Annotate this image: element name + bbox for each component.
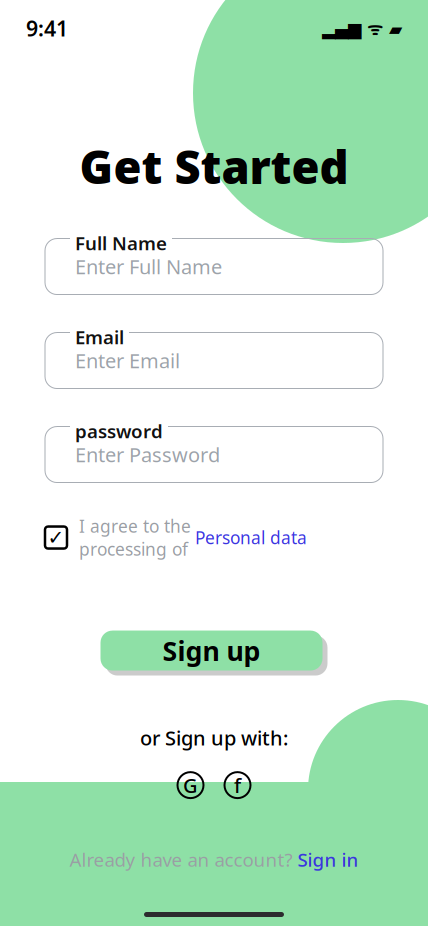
staticText: Enter Full Name (75, 253, 222, 280)
button[interactable]: Sign up (100, 631, 327, 676)
staticText: Email (75, 324, 124, 349)
staticText: I agree to the processing of (79, 514, 191, 560)
staticText: G (183, 772, 198, 798)
staticText: Full Name (75, 230, 167, 255)
staticText: ▂▄▆ ᯤ ▰ (322, 17, 402, 40)
staticText: Enter Password (75, 441, 220, 468)
button[interactable]: Sign up with Google (175, 770, 205, 800)
staticText: Enter Email (75, 347, 180, 374)
staticText: Sign in (297, 847, 358, 872)
button[interactable]: Sign up with Facebook (222, 770, 252, 800)
button[interactable]: ✓ (0, 514, 428, 560)
staticText: 9:41 (26, 14, 68, 42)
staticText: f (234, 772, 241, 798)
staticText: Already have an account? (69, 847, 292, 872)
staticText: password (75, 418, 163, 443)
staticText: Get Started (79, 136, 348, 196)
staticText: or Sign up with: (140, 725, 288, 751)
staticText: ✓ (47, 526, 64, 549)
staticText: Personal data (195, 526, 307, 549)
button[interactable]: Already have an account? (69, 847, 358, 872)
staticText: Sign up (162, 633, 260, 668)
